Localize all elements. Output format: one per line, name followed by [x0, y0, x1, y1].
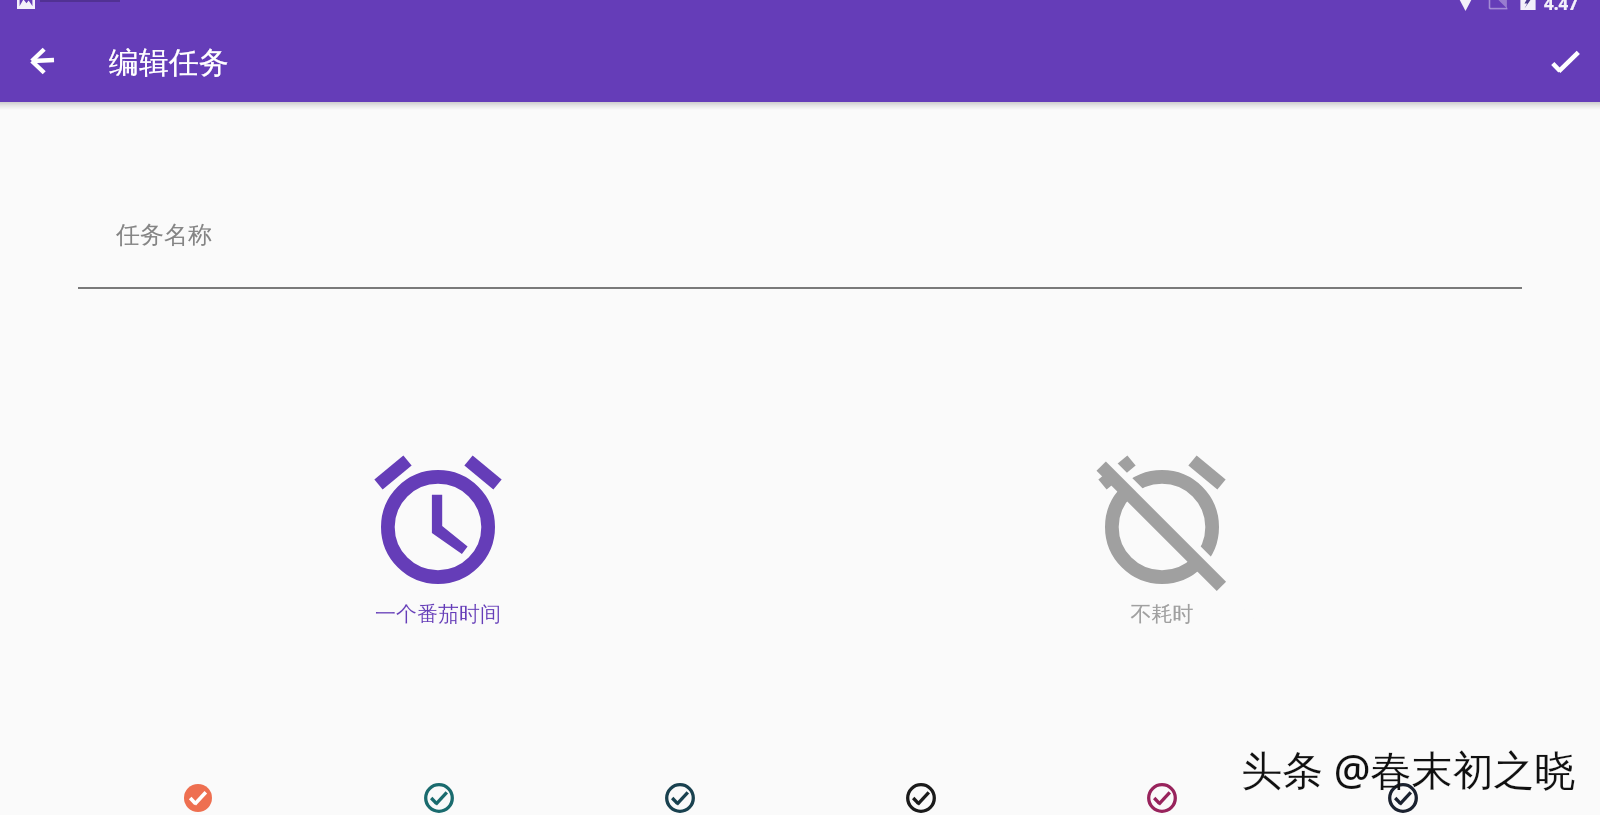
button[interactable]: One pomodoro	[348, 437, 528, 632]
staticText: 一个番茄时间	[348, 601, 528, 627]
staticText: 4.47	[1544, 0, 1578, 15]
staticText: 编辑任务	[109, 44, 229, 82]
button[interactable]: No time	[1072, 437, 1252, 632]
staticText: 头条 @春末初之晓	[1241, 741, 1576, 797]
button[interactable]: Back	[20, 40, 66, 86]
button[interactable]: Colour option 3	[656, 774, 704, 815]
button[interactable]: Save	[1540, 40, 1584, 84]
button[interactable]: Colour option 4	[897, 774, 945, 815]
button[interactable]: Colour option 1	[174, 774, 222, 815]
staticText: 任务名称	[116, 220, 212, 250]
button[interactable]: Colour option 2	[415, 774, 463, 815]
staticText: 不耗时	[1072, 601, 1252, 627]
button[interactable]: Colour option 5	[1138, 774, 1186, 815]
button[interactable]: Colour option 6	[1379, 774, 1427, 815]
